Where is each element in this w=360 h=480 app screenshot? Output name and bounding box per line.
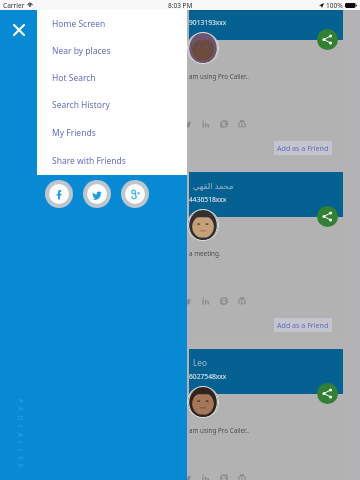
staticText: 4436518xxx <box>189 195 227 204</box>
staticText: a meeting. <box>189 249 221 258</box>
staticText: 100% <box>326 1 343 10</box>
staticText: My Friends <box>52 127 96 139</box>
button[interactable]: Home Screen <box>37 10 187 37</box>
button[interactable]: Share on Twitter <box>83 180 111 208</box>
staticText: am using Pro Caller.. <box>189 426 250 435</box>
button[interactable]: My Friends <box>37 119 187 147</box>
staticText: محمد القهي <box>193 180 234 191</box>
button[interactable]: Search History <box>37 91 187 119</box>
button[interactable]: Share with Friends <box>37 147 187 175</box>
button[interactable]: Share on Google Plus <box>121 180 149 208</box>
button[interactable]: Share on Facebook <box>45 180 73 208</box>
staticText: 9013193xxx <box>189 18 227 27</box>
staticText: P R O C A L L E R <box>16 399 25 470</box>
button[interactable]: Add as a Friend <box>274 141 332 155</box>
button[interactable]: Close menu <box>5 16 33 44</box>
button[interactable]: Near by places <box>37 37 187 64</box>
staticText: Share with Friends <box>52 155 126 167</box>
staticText: Hot Search <box>52 72 96 84</box>
staticText: Carrier <box>3 1 25 10</box>
staticText: Add as a Friend <box>277 320 329 330</box>
button[interactable]: Add as a Friend <box>274 318 332 332</box>
staticText: 6027548xxx <box>189 372 227 381</box>
button[interactable]: Share contact <box>317 29 338 50</box>
button[interactable]: Share contact <box>317 383 338 404</box>
staticText: Near by places <box>52 45 111 57</box>
staticText: Leo <box>193 357 207 368</box>
button[interactable]: Share contact <box>317 206 338 227</box>
staticText: am using Pro Caller.. <box>189 72 250 81</box>
button[interactable]: Hot Search <box>37 64 187 91</box>
staticText: Add as a Friend <box>277 143 329 153</box>
staticText: 8:03 PM <box>168 1 193 10</box>
staticText: Home Screen <box>52 18 106 30</box>
staticText: Search History <box>52 99 110 111</box>
